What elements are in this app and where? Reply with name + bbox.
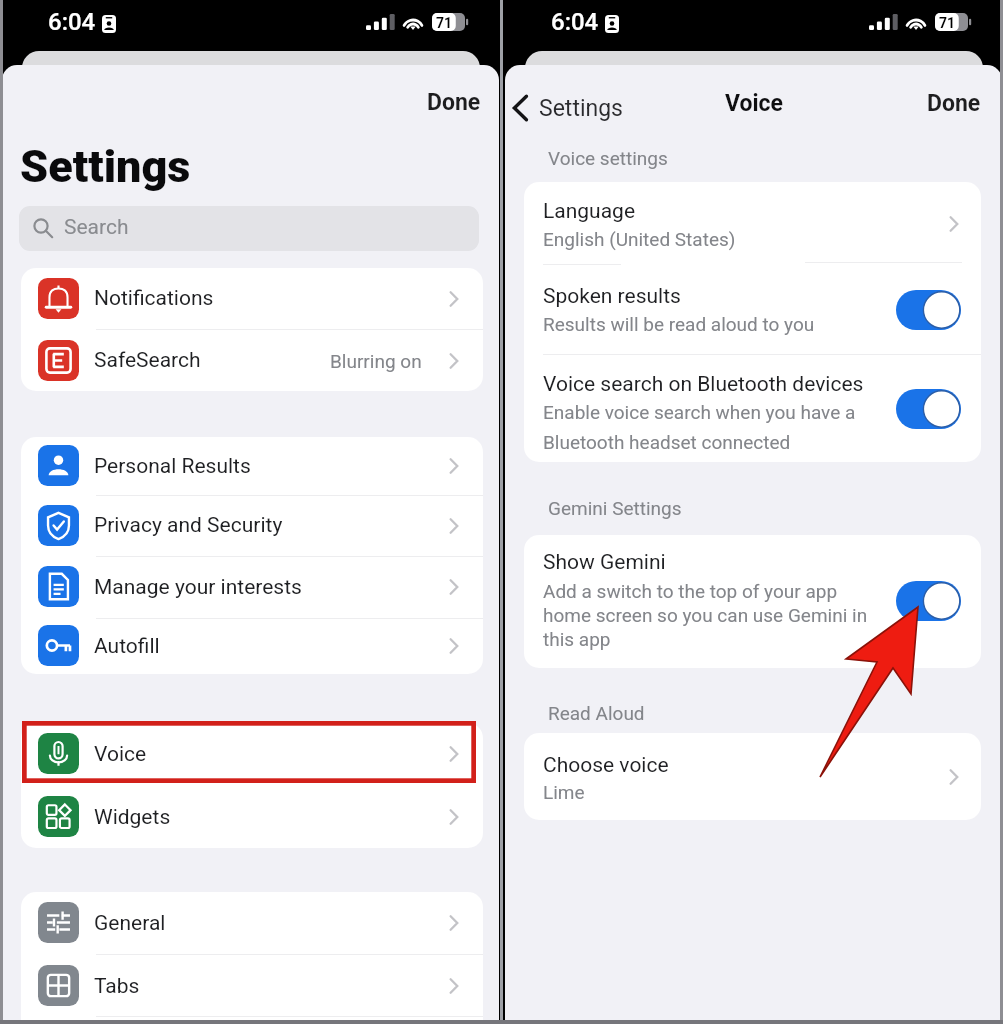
button[interactable]: Done	[913, 78, 995, 129]
button[interactable]: General	[21, 892, 483, 954]
button[interactable]: Toggle	[896, 389, 961, 429]
staticText: English (United States)	[543, 228, 736, 250]
button[interactable]: Toggle	[896, 290, 961, 330]
button[interactable]: Manage your interests	[21, 556, 483, 618]
staticText: Done	[927, 90, 981, 117]
staticText: Lime	[543, 781, 585, 803]
staticText: 6:04	[48, 8, 96, 36]
staticText: SafeSearch	[94, 348, 201, 373]
staticText: Voice	[725, 90, 783, 117]
staticText: Notifications	[94, 286, 214, 311]
button[interactable]: Voice search on Bluetooth devices	[524, 354, 981, 462]
staticText: Enable voice search when you have a Blue…	[543, 401, 856, 453]
staticText: Personal Results	[94, 454, 251, 479]
staticText: Spoken results	[543, 284, 681, 309]
button[interactable]: Autofill	[21, 618, 483, 674]
button[interactable]: Done	[413, 77, 495, 128]
staticText: Settings	[20, 140, 191, 193]
button[interactable]: Notifications	[21, 268, 483, 329]
staticText: Choose voice	[543, 753, 669, 778]
staticText: Read Aloud	[548, 702, 645, 724]
other: Back to Settings	[512, 94, 529, 122]
staticText: 71	[436, 15, 453, 31]
button[interactable]: Personal Results	[21, 437, 483, 495]
staticText: Manage your interests	[94, 575, 302, 600]
button[interactable]: Back to Settings	[512, 87, 623, 129]
button[interactable]: Search	[19, 206, 479, 251]
button[interactable]: Spoken results	[524, 266, 981, 354]
button[interactable]: SafeSearch	[21, 330, 483, 391]
button[interactable]: Language	[524, 182, 981, 266]
staticText: Show Gemini	[543, 550, 666, 575]
staticText: Voice search on Bluetooth devices	[543, 372, 864, 397]
staticText: Done	[427, 89, 481, 116]
staticText: Tabs	[94, 974, 140, 999]
staticText: Widgets	[94, 805, 171, 830]
staticText: Gemini Settings	[548, 497, 682, 519]
button[interactable]: Privacy and Security	[21, 495, 483, 556]
button[interactable]: Voice	[21, 723, 483, 785]
button[interactable]: Choose voice	[524, 733, 981, 820]
button[interactable]: Tabs	[21, 955, 483, 1017]
staticText: Results will be read aloud to you	[543, 313, 815, 335]
staticText: Blurring on	[330, 350, 422, 372]
staticText: Settings	[539, 95, 623, 122]
button[interactable]: Toggle	[896, 581, 961, 621]
staticText: Language	[543, 199, 636, 224]
staticText: Autofill	[94, 634, 160, 659]
staticText: Voice settings	[548, 147, 668, 169]
staticText: 71	[939, 15, 956, 31]
button[interactable]: Show Gemini	[524, 535, 981, 668]
staticText: Voice	[94, 742, 147, 767]
staticText: Search	[64, 215, 129, 240]
staticText: Add a switch to the top of your app home…	[543, 580, 868, 651]
staticText: Privacy and Security	[94, 513, 283, 538]
staticText: 6:04	[551, 8, 599, 36]
button[interactable]: Widgets	[21, 786, 483, 848]
staticText: General	[94, 911, 166, 936]
